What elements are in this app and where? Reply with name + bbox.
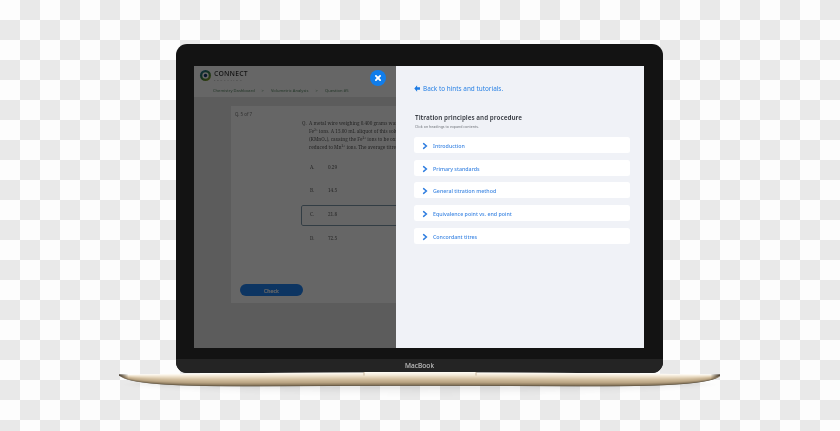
staticText: Concordant titres [433,233,478,240]
staticText: EDUCATION [214,78,244,81]
staticText: Back to hints and tutorials. [423,84,504,93]
button[interactable]: Primary standards [414,160,630,176]
staticText: Check [264,287,279,294]
staticText: > [309,88,325,94]
staticText: MacBook [405,361,434,370]
staticText: > [255,88,271,94]
button[interactable]: Introduction [414,137,630,153]
button[interactable]: Equivalence point vs. end point [414,205,630,221]
button[interactable]: Concordant titres [414,228,630,244]
staticText: General titration method [433,187,497,194]
staticText: (KMnO₄), causing the Fe²⁺ ions to be oxi… [309,136,396,144]
staticText: Fe²⁺ ions. A 15.00 mL aliquot of this so… [309,128,396,136]
staticText: 21.8 [328,211,338,217]
staticText: A. [310,164,315,170]
staticText: Primary standards [433,165,480,172]
staticText: Titration principles and procedure [415,113,522,122]
staticText: Q. [302,120,307,126]
button[interactable]: Close dialog [370,70,386,86]
staticText: B. [310,187,315,193]
staticText: D. [310,235,315,241]
staticText: Q. 5 of 7 [235,111,253,117]
staticText: 0.29 [328,164,338,170]
button[interactable]: Volumetric Analysis [271,88,309,94]
button[interactable]: General titration method [414,182,630,198]
button[interactable]: Chemistry Dashboard [213,88,255,94]
staticText: Introduction [433,142,465,149]
staticText: Click on headings to expand contents. [415,124,480,129]
staticText: CONNECT [214,69,248,78]
button[interactable] [301,205,396,226]
staticText: 72.5 [328,235,338,241]
staticText: C. [310,211,315,217]
button[interactable]: Check [240,284,303,296]
staticText: 14.5 [328,187,338,193]
staticText: Question #5 [325,88,349,94]
staticText: Equivalence point vs. end point [433,210,512,217]
button[interactable]: Back to hints and tutorials. [414,84,504,93]
staticText: reduced to Mn²⁺ ions. The average titre … [309,144,396,152]
staticText: A metal wire weighing 0.400 grams was di… [309,120,396,128]
